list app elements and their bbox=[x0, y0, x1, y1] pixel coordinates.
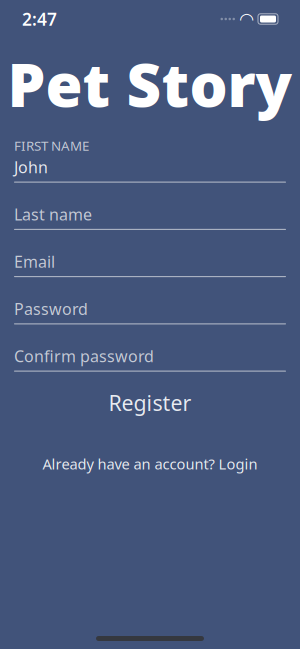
button[interactable]: Register bbox=[0, 381, 300, 425]
staticText: Register bbox=[108, 389, 191, 417]
staticText: Pet Story bbox=[7, 44, 292, 124]
staticText: John bbox=[14, 156, 48, 178]
staticText: Last name bbox=[14, 204, 92, 225]
staticText: 2:47 bbox=[22, 7, 57, 30]
staticText: Email bbox=[14, 251, 55, 272]
staticText: Already have an account? Login bbox=[42, 454, 257, 473]
staticText: Confirm password bbox=[14, 345, 154, 367]
staticText: Password bbox=[14, 298, 88, 319]
staticText: ◠ bbox=[240, 9, 253, 29]
staticText: FIRST NAME bbox=[14, 137, 89, 154]
button[interactable]: Already have an account? Login bbox=[0, 446, 300, 481]
